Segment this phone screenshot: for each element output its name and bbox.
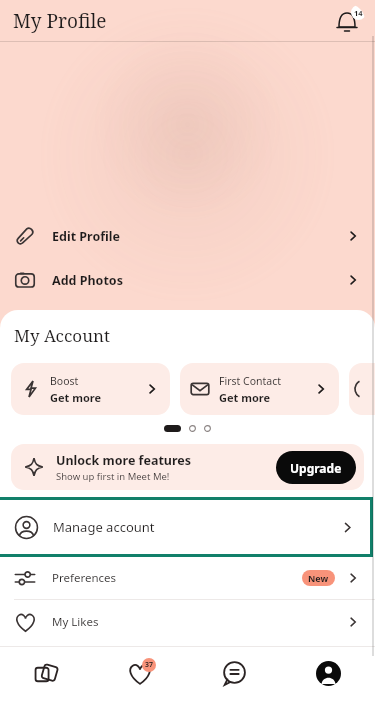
button[interactable]: Profile: [281, 646, 375, 701]
button[interactable]: Boost: [11, 363, 170, 415]
staticText: Upgrade: [290, 460, 342, 476]
button[interactable]: Messages: [187, 646, 281, 701]
staticText: Unlock more features: [56, 452, 192, 469]
staticText: Get more: [50, 390, 102, 405]
staticText: 37: [145, 660, 154, 670]
staticText: First Contact: [219, 374, 282, 388]
button[interactable]: Edit Profile: [0, 220, 375, 252]
staticText: New: [308, 572, 329, 584]
staticText: 14: [354, 8, 363, 18]
staticText: Show up first in Meet Me!: [56, 470, 170, 483]
staticText: Preferences: [52, 570, 117, 586]
button[interactable]: Likes: [93, 646, 187, 701]
button[interactable]: Add Photos: [0, 264, 375, 296]
button[interactable]: Manage account: [0, 500, 370, 554]
staticText: Get more: [219, 390, 271, 405]
staticText: Boost: [50, 374, 79, 388]
staticText: Manage account: [53, 518, 155, 536]
button[interactable]: Upgrade: [276, 451, 356, 484]
staticText: My Likes: [52, 614, 99, 630]
button[interactable]: Discover: [0, 646, 93, 701]
button[interactable]: Preferences: [0, 557, 375, 599]
button[interactable]: More offers: [349, 363, 375, 415]
button[interactable]: First Contact: [180, 363, 339, 415]
staticText: My Account: [14, 324, 110, 347]
staticText: My Profile: [13, 8, 107, 34]
button[interactable]: My Likes: [0, 600, 375, 644]
button[interactable]: Notifications: [331, 4, 365, 38]
staticText: Add Photos: [52, 272, 123, 289]
button[interactable]: Unlock more features: [11, 444, 364, 490]
staticText: Edit Profile: [52, 228, 120, 245]
